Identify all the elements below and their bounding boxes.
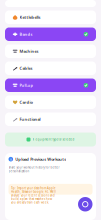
staticText: i (10, 156, 11, 162)
staticText: Share your workout history for better pe… (8, 166, 59, 173)
button[interactable]: Kettlebells (5, 10, 96, 24)
staticText: Pull-up (20, 83, 34, 88)
staticText: Tip: Import your data from Apple Health,… (11, 186, 56, 204)
button[interactable]: Cardio (5, 95, 96, 109)
button[interactable]: Machines (5, 44, 96, 58)
staticText: Cardio (20, 100, 33, 105)
staticText: Cables (20, 66, 33, 71)
staticText: 4 equipment type(s) selected (32, 138, 74, 141)
staticText: Functional (20, 117, 41, 122)
staticText: Kettlebells (20, 15, 41, 20)
button[interactable]: Bands (5, 27, 96, 41)
staticText: Machines (20, 49, 39, 54)
staticText: Upload Previous Workouts (15, 156, 66, 162)
button[interactable]: Cables (5, 61, 96, 75)
button[interactable]: Chat (78, 197, 92, 211)
button[interactable]: Pull-up (5, 78, 96, 92)
staticText: Bands (20, 32, 33, 37)
button[interactable]: Functional (5, 112, 96, 126)
